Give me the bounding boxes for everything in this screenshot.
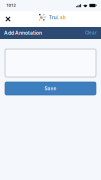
staticText: Clear (85, 30, 97, 36)
staticText: Lab (57, 15, 66, 20)
staticText: Save (44, 86, 56, 91)
staticText: Tru (49, 15, 57, 20)
button[interactable]: Save (5, 82, 96, 95)
staticText: 10:12 (6, 3, 15, 8)
button[interactable]: Clear (85, 30, 97, 36)
button[interactable]: Close (0, 11, 15, 26)
staticText: Add Annotation (4, 30, 42, 36)
